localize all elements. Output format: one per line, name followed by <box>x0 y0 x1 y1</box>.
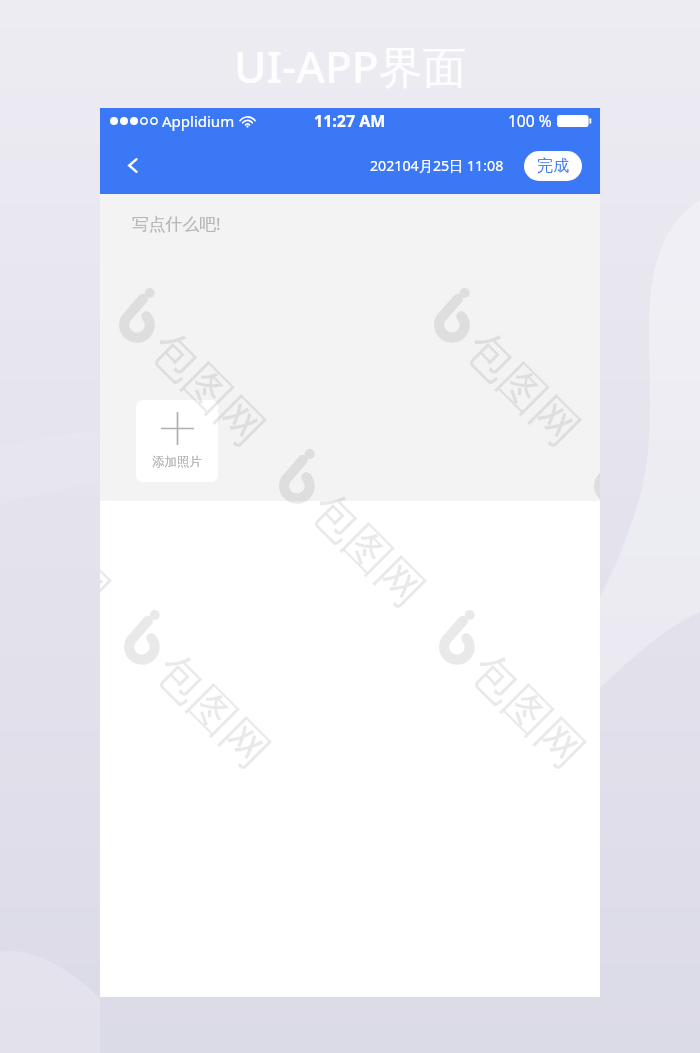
button[interactable]: Add photo <box>136 400 218 482</box>
staticText: 100 % <box>508 110 552 131</box>
staticText: Applidium <box>162 111 235 131</box>
staticText: 11:27 AM <box>314 110 386 132</box>
staticText: 202104月25日 11:08 <box>370 156 504 175</box>
button[interactable]: 完成 <box>524 151 582 181</box>
staticText: 写点什么吧! <box>132 212 221 235</box>
button[interactable]: Back <box>121 152 147 178</box>
staticText: 添加照片 <box>152 454 202 470</box>
staticText: UI-APP界面 <box>234 36 467 96</box>
staticText: 完成 <box>537 156 569 176</box>
